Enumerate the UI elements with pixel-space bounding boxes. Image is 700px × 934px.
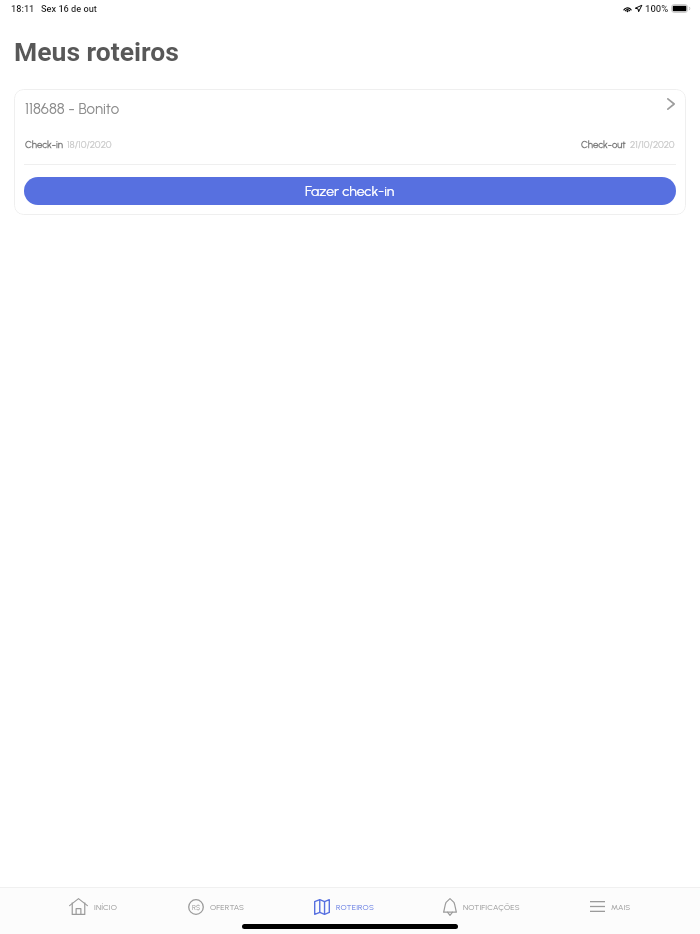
button[interactable]: Mais — [590, 888, 631, 925]
staticText: ROTEIROS — [336, 902, 374, 912]
staticText: INÍCIO — [94, 902, 118, 912]
staticText: 18/10/2020 — [67, 139, 112, 151]
staticText: NOTIFICAÇÕES — [463, 902, 520, 912]
staticText: 100% — [645, 3, 669, 14]
staticText: Check-out — [581, 139, 626, 151]
button[interactable]: Notificações — [443, 888, 520, 925]
staticText: OFERTAS — [210, 902, 245, 912]
button[interactable]: Ofertas — [188, 888, 245, 925]
staticText: R$ — [192, 903, 201, 911]
button[interactable]: Início — [69, 888, 118, 925]
button[interactable]: Fazer check-in — [24, 177, 676, 205]
staticText: 18:11 — [11, 3, 35, 14]
staticText: 21/10/2020 — [630, 139, 675, 151]
staticText: MAIS — [611, 902, 631, 912]
staticText: Meus roteiros — [14, 36, 179, 67]
staticText: Sex 16 de out — [41, 3, 97, 14]
staticText: 118688 - Bonito — [25, 100, 120, 118]
staticText: Fazer check-in — [305, 183, 395, 200]
button[interactable]: 118688 - Bonito — [14, 89, 686, 129]
button[interactable]: Roteiros — [314, 888, 374, 925]
staticText: Check-in — [25, 139, 63, 151]
